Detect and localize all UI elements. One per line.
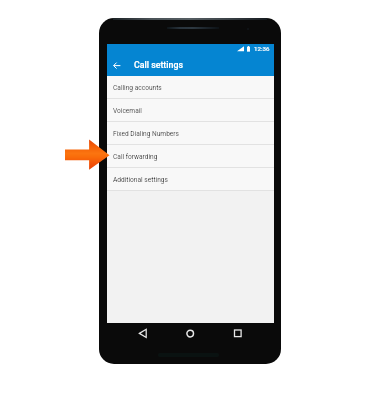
staticText: Additional settings <box>113 176 168 184</box>
button[interactable]: Calling accounts <box>107 76 274 99</box>
button[interactable]: Additional settings <box>107 168 274 191</box>
staticText: Fixed Dialing Numbers <box>113 130 179 138</box>
button[interactable]: Call forwarding <box>107 145 274 168</box>
button[interactable]: Voicemail <box>107 99 274 122</box>
staticText: Call forwarding <box>113 153 158 161</box>
button[interactable]: Recent apps <box>230 325 246 341</box>
button[interactable]: Fixed Dialing Numbers <box>107 122 274 145</box>
staticText: Call settings <box>134 60 183 70</box>
button[interactable]: Back <box>135 325 151 341</box>
button[interactable]: Back <box>107 53 127 76</box>
button[interactable]: Home <box>182 325 198 341</box>
staticText: Voicemail <box>113 107 142 115</box>
staticText: Calling accounts <box>113 84 162 92</box>
staticText: 12:36 <box>254 45 270 52</box>
